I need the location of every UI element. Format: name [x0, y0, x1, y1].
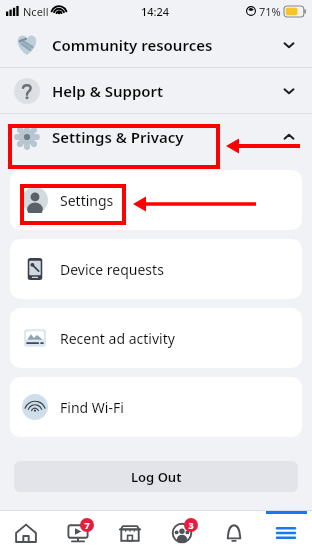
button[interactable]: Menu	[260, 511, 312, 555]
staticText: Community resources	[52, 35, 213, 55]
staticText: 71%	[259, 4, 281, 19]
button[interactable]: Device requests	[10, 239, 302, 299]
button[interactable]: Groups	[156, 511, 208, 555]
button[interactable]: Home	[0, 511, 52, 555]
button[interactable]: Settings & Privacy	[0, 114, 312, 159]
button[interactable]: Recent ad activity	[10, 308, 302, 368]
button[interactable]: Settings	[10, 170, 302, 230]
button[interactable]: Help & Support	[0, 68, 312, 113]
staticText: 7	[84, 519, 90, 531]
staticText: 14:24	[141, 4, 170, 19]
staticText: Device requests	[60, 260, 164, 279]
staticText: Find Wi-Fi	[60, 398, 124, 417]
staticText: Recent ad activity	[60, 329, 175, 348]
button[interactable]: Community resources	[0, 22, 312, 67]
staticText: 3	[188, 519, 194, 531]
staticText: Ncell	[23, 4, 49, 19]
staticText: Settings & Privacy	[52, 127, 184, 147]
button[interactable]: Marketplace	[104, 511, 156, 555]
button[interactable]: Watch	[52, 511, 104, 555]
button[interactable]: Log Out	[14, 461, 298, 492]
staticText: Help & Support	[52, 81, 164, 101]
button[interactable]: Find Wi-Fi	[10, 377, 302, 437]
button[interactable]: Notifications	[208, 511, 260, 555]
staticText: Settings	[60, 191, 114, 210]
staticText: Log Out	[131, 468, 182, 486]
